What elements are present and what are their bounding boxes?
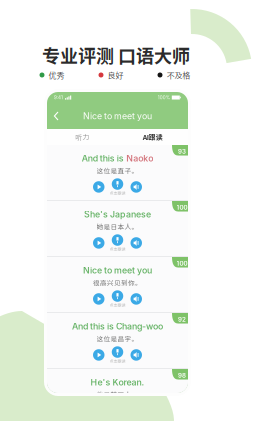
staticText: 100 (176, 260, 187, 267)
staticText: Nice to meet you (83, 265, 152, 276)
staticText: AI跟读 (143, 132, 163, 142)
staticText: And this is Chang-woo (72, 321, 163, 332)
staticText: 100% (158, 95, 170, 100)
staticText: 听力 (75, 132, 89, 142)
staticText: 专业评测 口语大师 (42, 42, 190, 68)
button[interactable]: She's Japanese (47, 201, 188, 256)
staticText: 点击跟读 (109, 190, 125, 196)
staticText: He's Korean. (90, 377, 144, 388)
button[interactable]: AI跟读 (117, 129, 188, 145)
button[interactable]: And this is (47, 145, 188, 200)
staticText: 点击跟读 (109, 358, 125, 364)
staticText: 她是日本人。 (96, 222, 138, 231)
button[interactable]: 听力 (47, 129, 117, 145)
staticText: 点击跟读 (109, 246, 125, 252)
staticText: 他是韩国人。 (96, 390, 138, 399)
staticText: Nice to meet you (83, 111, 152, 121)
staticText: 93 (178, 148, 186, 155)
button[interactable]: And this is Chang-woo (47, 313, 188, 368)
staticText: 良好 (107, 69, 123, 81)
staticText: 98 (178, 372, 186, 379)
button[interactable]: He's Korean. (47, 369, 188, 421)
staticText: 100 (176, 204, 187, 211)
staticText: And this is (82, 153, 124, 164)
staticText: 这位是昌宇。 (96, 334, 138, 343)
staticText: 9:41 (54, 95, 63, 100)
staticText: Naoko (126, 153, 153, 164)
button[interactable]: Nice to meet you (47, 257, 188, 312)
staticText: 点击跟读 (109, 302, 125, 308)
staticText: 很高兴见到你。 (93, 278, 142, 287)
button[interactable]: Back (52, 110, 62, 121)
staticText: She's Japanese (84, 209, 151, 220)
staticText: 92 (178, 316, 186, 323)
staticText: 不及格 (166, 69, 190, 81)
staticText: 这位是直子。 (96, 166, 138, 175)
staticText: 优秀 (48, 69, 64, 81)
